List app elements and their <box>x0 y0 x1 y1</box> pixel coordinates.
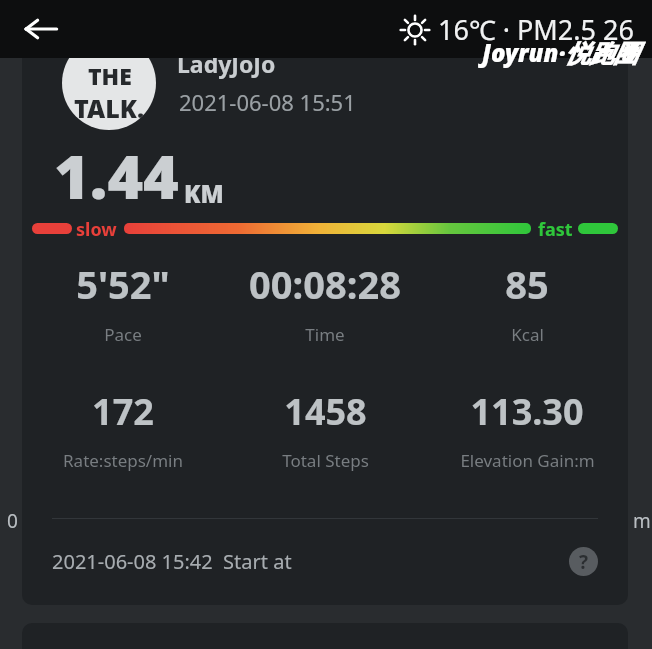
staticText: 2021-06-08 15:42 Start at <box>52 548 292 575</box>
button[interactable]: Back <box>12 0 70 58</box>
staticText: 16℃ · PM2.5 26 <box>438 11 634 48</box>
staticText: Elevation Gain:m <box>460 449 595 472</box>
staticText: 00:08:28 <box>249 258 401 310</box>
staticText: Joyrun·悦跑圈 <box>482 36 638 69</box>
staticText: KM <box>184 177 224 210</box>
staticText: 2021-06-08 15:51 <box>179 87 356 117</box>
staticText: slow <box>76 217 117 239</box>
staticText: Total Steps <box>282 449 369 472</box>
staticText: m <box>633 508 651 534</box>
staticText: 85 <box>505 258 549 310</box>
staticText: TALK. <box>74 91 145 125</box>
button[interactable]: Help <box>569 547 598 576</box>
staticText: 0 <box>7 508 18 534</box>
staticText: fast <box>538 217 573 239</box>
staticText: 5'52" <box>76 258 170 310</box>
button[interactable]: 2021-06-08 15:42 Start at <box>22 532 628 590</box>
staticText: LadyJoJo <box>177 48 276 79</box>
staticText: 1.44 <box>54 134 179 217</box>
staticText: Kcal <box>511 323 544 346</box>
staticText: 172 <box>92 387 154 436</box>
staticText: ? <box>579 549 589 575</box>
staticText: Pace <box>104 323 142 346</box>
staticText: THE <box>88 60 132 91</box>
staticText: 113.30 <box>470 387 584 436</box>
staticText: Time <box>305 323 345 346</box>
staticText: Rate:steps/min <box>63 449 183 472</box>
staticText: 1458 <box>284 387 367 436</box>
